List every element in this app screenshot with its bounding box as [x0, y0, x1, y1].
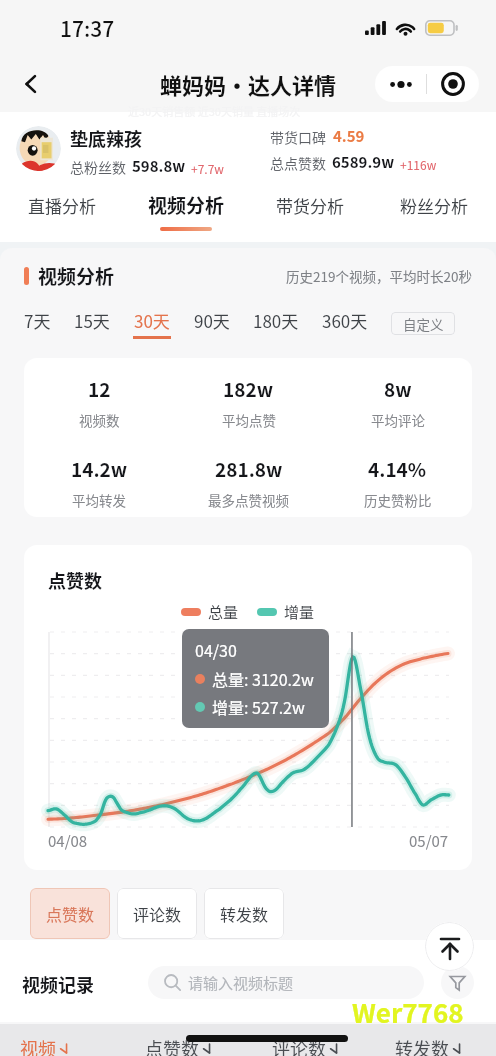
- staticText: 平均评论: [371, 410, 425, 430]
- staticText: 8w: [384, 375, 412, 403]
- button[interactable]: 评论数: [117, 888, 197, 939]
- staticText: 281.8w: [215, 455, 283, 483]
- button[interactable]: Scroll to top: [425, 922, 474, 971]
- staticText: 12: [88, 375, 111, 403]
- staticText: 360天: [322, 308, 368, 333]
- staticText: 平均转发: [72, 490, 126, 510]
- staticText: 598.8w: [132, 155, 186, 177]
- staticText: Wer7768: [352, 993, 464, 1031]
- staticText: 7天: [24, 308, 51, 333]
- button[interactable]: 180天: [247, 308, 305, 339]
- staticText: 总量: [208, 601, 239, 623]
- staticText: 4.14%: [368, 455, 427, 483]
- staticText: 点赞数: [48, 567, 102, 593]
- staticText: 05/07: [409, 830, 449, 852]
- staticText: 30天: [134, 308, 170, 333]
- staticText: 90天: [194, 308, 230, 333]
- staticText: 垫底辣孩: [70, 125, 142, 151]
- staticText: 14.2w: [71, 455, 128, 483]
- staticText: 182w: [223, 375, 274, 403]
- staticText: 点赞数: [46, 902, 95, 925]
- staticText: 带货分析: [276, 193, 344, 218]
- staticText: 请输入视频标题: [188, 972, 294, 994]
- button[interactable]: 粉丝分析: [372, 186, 496, 242]
- staticText: 视频: [20, 1035, 56, 1056]
- button[interactable]: 视频分析: [124, 186, 248, 242]
- staticText: 04/30: [195, 638, 237, 661]
- staticText: 视频分析: [148, 191, 225, 219]
- button[interactable]: 点赞数: [145, 1035, 215, 1056]
- staticText: 粉丝分析: [400, 193, 468, 218]
- staticText: +116w: [400, 156, 437, 173]
- staticText: 评论数: [272, 1035, 326, 1056]
- staticText: 历史219个视频，平均时长20秒: [286, 266, 472, 286]
- button[interactable]: 视频: [20, 1035, 72, 1056]
- button[interactable]: Filter: [441, 966, 474, 999]
- staticText: 视频分析: [38, 262, 115, 290]
- button[interactable]: 直播分析: [0, 186, 124, 242]
- staticText: 总点赞数: [270, 153, 326, 173]
- staticText: 转发数: [395, 1035, 449, 1056]
- staticText: 视频记录: [22, 971, 94, 997]
- staticText: 自定义: [403, 314, 444, 334]
- staticText: 04/08: [48, 830, 88, 852]
- staticText: 6589.9w: [332, 151, 395, 173]
- staticText: 总量: 3120.2w: [212, 667, 314, 690]
- staticText: 历史赞粉比: [364, 490, 432, 510]
- staticText: 最多点赞视频: [208, 490, 289, 510]
- button[interactable]: Back: [12, 65, 50, 103]
- button[interactable]: 转发数: [204, 888, 284, 939]
- staticText: 180天: [253, 308, 299, 333]
- staticText: 总粉丝数: [70, 157, 126, 177]
- button[interactable]: Record: [427, 66, 479, 102]
- staticText: 直播分析: [28, 193, 96, 218]
- staticText: 增量: 527.2w: [212, 695, 305, 718]
- button[interactable]: 15天: [68, 308, 116, 339]
- button[interactable]: 90天: [188, 308, 236, 339]
- staticText: 增量: [284, 601, 315, 623]
- staticText: 带货口碑: [270, 127, 326, 147]
- staticText: 视频数: [79, 410, 120, 430]
- button[interactable]: 评论数: [272, 1035, 342, 1056]
- staticText: 蝉妈妈·达人详情: [160, 68, 337, 100]
- button[interactable]: 7天: [18, 308, 57, 339]
- button[interactable]: 带货分析: [248, 186, 372, 242]
- staticText: 15天: [74, 308, 110, 333]
- staticText: 评论数: [133, 902, 182, 925]
- button[interactable]: 点赞数: [30, 888, 110, 939]
- button[interactable]: 30天: [127, 308, 177, 339]
- button[interactable]: 请输入视频标题: [148, 966, 424, 999]
- staticText: 近30天销售额 近30天销量 直播场次: [128, 103, 301, 119]
- staticText: 4.59: [333, 125, 365, 147]
- staticText: 平均点赞: [222, 410, 276, 430]
- staticText: 点赞数: [145, 1035, 199, 1056]
- button[interactable]: 自定义: [391, 312, 455, 335]
- staticText: +7.7w: [191, 160, 224, 177]
- staticText: 17:37: [60, 13, 115, 43]
- button[interactable]: 转发数: [395, 1035, 465, 1056]
- button[interactable]: More options: [375, 66, 426, 102]
- button[interactable]: 360天: [316, 308, 374, 339]
- staticText: 转发数: [220, 902, 269, 925]
